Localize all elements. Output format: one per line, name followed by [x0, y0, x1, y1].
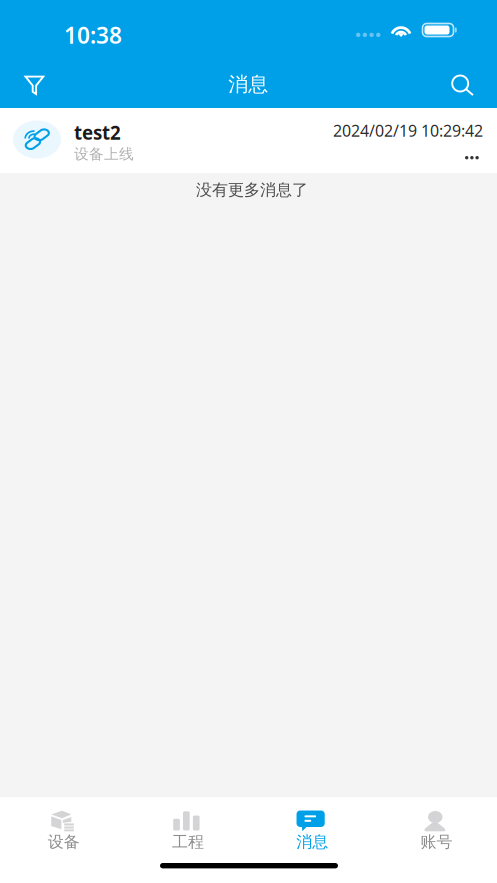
staticText: 消息: [228, 72, 268, 97]
button[interactable]: 设备: [0, 806, 124, 857]
button[interactable]: 筛选: [0, 56, 64, 108]
button[interactable]: 账号: [373, 806, 497, 857]
button[interactable]: 工程: [124, 806, 248, 857]
staticText: 没有更多消息了: [196, 180, 308, 200]
staticText: 工程: [172, 832, 204, 852]
staticText: 2024/02/19 10:29:42: [333, 120, 483, 141]
staticText: 10:38: [64, 20, 122, 50]
staticText: 设备上线: [74, 145, 134, 163]
button[interactable]: test2: [0, 108, 497, 173]
staticText: 消息: [296, 832, 328, 852]
button[interactable]: 消息: [248, 806, 373, 857]
staticText: 账号: [420, 832, 452, 852]
staticText: 设备: [48, 832, 80, 852]
button[interactable]: 搜索: [433, 56, 497, 108]
staticText: test2: [74, 120, 121, 145]
